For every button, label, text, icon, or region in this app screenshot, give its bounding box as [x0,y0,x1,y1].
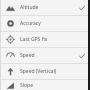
button[interactable]: Last GPS fix [0,32,90,47]
button[interactable]: Accuracy [0,16,90,31]
staticText: Slope [20,82,33,89]
button[interactable]: Slope [0,80,90,90]
button[interactable]: Speed (Vertical) [0,64,90,79]
staticText: Speed [20,52,35,59]
button[interactable]: Altitude [0,0,90,15]
staticText: Speed (Vertical) [20,68,57,75]
button[interactable]: Speed [0,48,90,63]
staticText: Altitude [20,4,39,11]
staticText: Last GPS fix [20,36,48,43]
staticText: Accuracy [20,20,41,27]
